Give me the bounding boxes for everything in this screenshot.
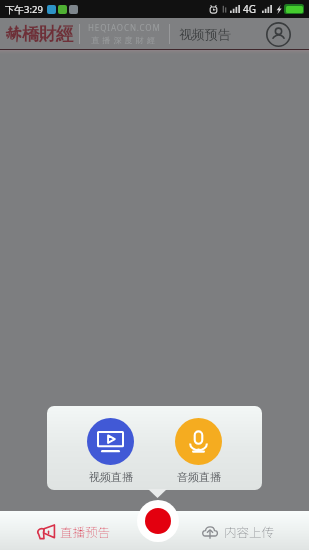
staticText: 直播深度財經 xyxy=(91,35,159,45)
staticText: 4G xyxy=(243,2,256,16)
staticText: 音频直播 xyxy=(177,470,221,484)
button[interactable]: Record xyxy=(137,500,179,542)
staticText: 视频预告 xyxy=(179,26,231,42)
button[interactable]: 视频直播 xyxy=(87,418,134,484)
staticText: 赫橋財經 xyxy=(5,23,73,45)
staticText: 下午3:29 xyxy=(5,3,43,16)
staticText: 视频直播 xyxy=(89,470,133,484)
button[interactable]: 音频直播 xyxy=(175,418,222,484)
button[interactable]: 内容上传 xyxy=(202,511,275,550)
staticText: HEQIAOCN.COM xyxy=(88,22,161,33)
button[interactable]: 视频预告 xyxy=(179,22,231,46)
button[interactable]: Account xyxy=(264,20,292,48)
staticText: 直播预告 xyxy=(60,522,111,540)
staticText: 内容上传 xyxy=(224,522,275,540)
button[interactable]: 直播预告 xyxy=(36,511,111,550)
